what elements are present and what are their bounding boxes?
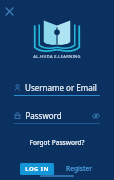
- button[interactable]: Forgot Password?: [25, 137, 89, 148]
- staticText: Password: [25, 110, 62, 121]
- button[interactable]: Close: [3, 5, 16, 18]
- staticText: Register: [66, 164, 92, 173]
- button[interactable]: Register: [63, 162, 95, 175]
- staticText: LOG IN: [25, 165, 49, 173]
- button[interactable]: Username or Email: [14, 82, 100, 96]
- button[interactable]: LOG IN: [20, 163, 54, 175]
- staticText: Forgot Password?: [29, 138, 85, 147]
- button[interactable]: Password: [14, 110, 100, 124]
- staticText: Username or Email: [25, 82, 97, 93]
- button[interactable]: Show password: [91, 111, 100, 120]
- staticText: AL-HUDA E-LEARNING: [33, 54, 81, 59]
